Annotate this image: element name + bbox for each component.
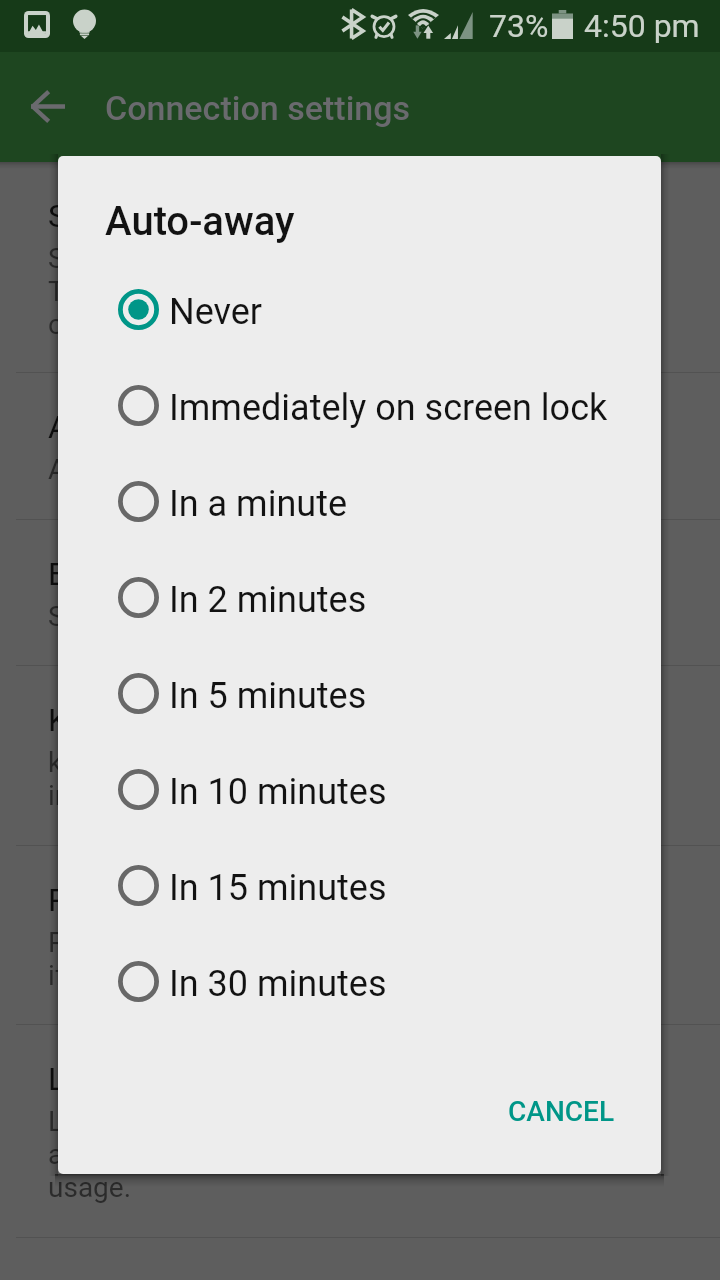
staticText: CANCEL — [508, 1095, 615, 1128]
button[interactable]: CANCEL — [493, 1066, 629, 1156]
staticText: if available — [48, 959, 182, 992]
button[interactable]: In 5 minutes — [58, 645, 661, 741]
staticText: Stay connected — [48, 600, 240, 633]
staticText: Enable roaming — [48, 555, 270, 593]
button[interactable]: Navigate up — [20, 78, 76, 134]
staticText: Set how often the app — [48, 242, 321, 275]
button[interactable]: Keep alive — [0, 666, 720, 846]
staticText: Prefer Wi-Fi — [48, 881, 213, 919]
staticText: Never — [169, 291, 263, 333]
button[interactable]: Limit downloads — [0, 1025, 720, 1238]
staticText: In 5 minutes — [169, 675, 367, 717]
button[interactable]: Never — [58, 261, 661, 357]
staticText: In 15 minutes — [169, 867, 387, 909]
button[interactable]: In a minute — [58, 453, 661, 549]
staticText: Keep alive — [48, 701, 193, 739]
staticText: usage. — [48, 1171, 132, 1204]
staticText: In 2 minutes — [169, 579, 367, 621]
staticText: keep the connection — [48, 746, 300, 779]
button[interactable]: Sync frequency — [0, 162, 720, 373]
staticText: on battery — [48, 308, 174, 341]
button[interactable]: In 30 minutes — [58, 933, 661, 1029]
staticText: Prefer Wi-Fi networks — [48, 926, 314, 959]
staticText: In a minute — [169, 483, 348, 525]
button[interactable]: In 10 minutes — [58, 741, 661, 837]
staticText: 4:50 pm — [584, 7, 700, 45]
button[interactable]: Prefer Wi-Fi — [0, 846, 720, 1025]
button[interactable]: In 15 minutes — [58, 837, 661, 933]
staticText: Limit downloads — [48, 1060, 284, 1098]
staticText: Automatically mark away — [48, 453, 361, 486]
staticText: in the background — [48, 779, 271, 812]
button[interactable]: Auto-away — [0, 373, 720, 520]
staticText: Limit automatic file — [48, 1105, 288, 1138]
staticText: and reduce mobile data — [48, 1138, 341, 1171]
staticText: 73% — [489, 7, 549, 45]
staticText: In 30 minutes — [169, 963, 387, 1005]
staticText: In 10 minutes — [169, 771, 387, 813]
button[interactable]: Enable roaming — [0, 520, 720, 666]
staticText: Immediately on screen lock — [169, 387, 608, 429]
staticText: Auto-away — [48, 408, 198, 446]
staticText: Sync frequency — [48, 197, 266, 235]
staticText: Connection settings — [105, 88, 411, 128]
button[interactable]: In 2 minutes — [58, 549, 661, 645]
staticText: Auto-away — [105, 198, 295, 245]
staticText: This may have an impact — [48, 275, 358, 308]
button[interactable]: Immediately on screen lock — [58, 357, 661, 453]
